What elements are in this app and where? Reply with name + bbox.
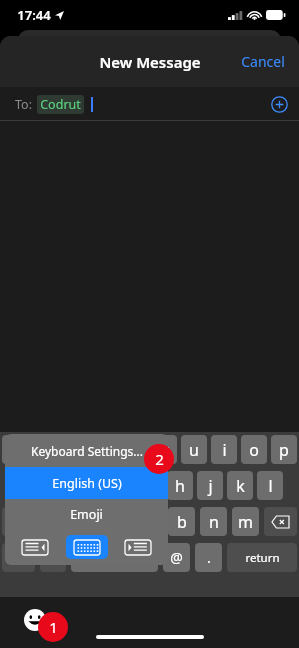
button[interactable]: w — [31, 435, 57, 464]
staticText: p — [279, 439, 289, 461]
button[interactable]: i — [211, 435, 237, 464]
button[interactable]: k — [227, 471, 253, 500]
staticText: m — [238, 511, 253, 533]
button[interactable]: q — [2, 435, 27, 464]
button[interactable]: t — [121, 435, 147, 464]
staticText: 2 — [155, 449, 164, 469]
staticText: Keyboard Settings... — [31, 443, 143, 459]
staticText: k — [236, 475, 245, 497]
button[interactable]: b — [168, 507, 195, 536]
button[interactable]: . — [195, 543, 222, 572]
staticText: d — [85, 475, 95, 497]
staticText: j — [208, 475, 213, 497]
staticText: l — [268, 475, 273, 497]
staticText: Codrut — [40, 96, 81, 113]
staticText: Text Message — [79, 622, 153, 638]
button[interactable]: App Store — [37, 617, 63, 643]
button[interactable]: d — [77, 471, 103, 500]
staticText: To: — [15, 96, 32, 113]
staticText: Cancel — [241, 52, 285, 71]
button[interactable]: f — [107, 471, 133, 500]
button[interactable]: Cancel — [227, 42, 299, 81]
staticText: e — [69, 439, 79, 461]
button[interactable]: h — [167, 471, 193, 500]
button[interactable]: 123 — [2, 543, 35, 572]
button[interactable]: Dock keyboard right — [117, 535, 159, 559]
button[interactable]: Emoji — [5, 499, 168, 529]
button[interactable]: r — [91, 435, 117, 464]
staticText: y — [160, 439, 169, 461]
button[interactable]: c — [104, 507, 131, 536]
staticText: . — [207, 548, 211, 567]
button[interactable]: @ — [163, 543, 190, 572]
staticText: New Message — [99, 52, 201, 72]
button[interactable]: return — [227, 543, 297, 572]
button[interactable]: e — [61, 435, 87, 464]
staticText: w — [38, 439, 51, 461]
staticText: 123 — [10, 551, 28, 565]
staticText: u — [189, 439, 199, 461]
button[interactable]: Text Message — [68, 618, 291, 642]
staticText: 17:44 — [17, 6, 51, 24]
button[interactable]: space — [71, 543, 158, 572]
staticText: b — [177, 511, 187, 533]
staticText: i — [222, 439, 227, 461]
button[interactable]: s — [47, 471, 73, 500]
staticText: n — [209, 511, 219, 533]
staticText: r — [101, 439, 108, 461]
button[interactable]: Emoji — [24, 609, 46, 631]
button[interactable]: Backspace — [264, 507, 297, 536]
button[interactable]: ⇧ — [2, 507, 35, 536]
button[interactable]: n — [200, 507, 227, 536]
staticText: Emoji — [70, 506, 103, 523]
button[interactable]: o — [241, 435, 267, 464]
button[interactable]: Camera — [8, 617, 34, 643]
staticText: English (US) — [52, 475, 122, 492]
staticText: o — [249, 439, 259, 461]
button[interactable]: x — [72, 507, 99, 536]
button[interactable]: g — [137, 471, 163, 500]
staticText: f — [117, 475, 123, 497]
staticText: @ — [170, 548, 183, 567]
button[interactable]: Keyboard Settings... — [5, 434, 168, 467]
button[interactable]: Dock keyboard left — [14, 535, 56, 559]
staticText: h — [175, 475, 185, 497]
button[interactable]: Emoji keyboard — [40, 543, 66, 572]
button[interactable]: Full keyboard — [66, 535, 108, 559]
button[interactable]: m — [232, 507, 259, 536]
button[interactable]: Add contact — [271, 96, 288, 113]
button[interactable]: j — [197, 471, 223, 500]
staticText: return — [245, 550, 280, 566]
staticText: space — [100, 550, 130, 565]
button[interactable]: y — [151, 435, 177, 464]
button[interactable]: English (US) — [5, 467, 168, 499]
button[interactable]: u — [181, 435, 207, 464]
staticText: s — [56, 475, 64, 497]
button[interactable]: p — [271, 435, 297, 464]
staticText: x — [81, 511, 90, 533]
button[interactable]: l — [257, 471, 283, 500]
staticText: t — [131, 439, 137, 461]
button[interactable]: a — [16, 471, 43, 500]
staticText: ☺ — [46, 550, 60, 565]
staticText: 1 — [49, 617, 58, 637]
